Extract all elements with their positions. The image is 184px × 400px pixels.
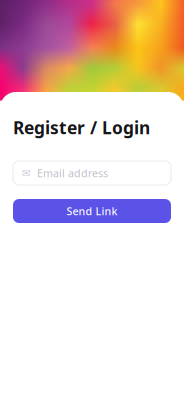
staticText: ✉ [22,167,31,179]
staticText: Register / Login [13,116,150,139]
staticText: Send Link [66,204,117,218]
button[interactable]: Send Link [13,199,171,223]
staticText: Email address [37,166,108,180]
